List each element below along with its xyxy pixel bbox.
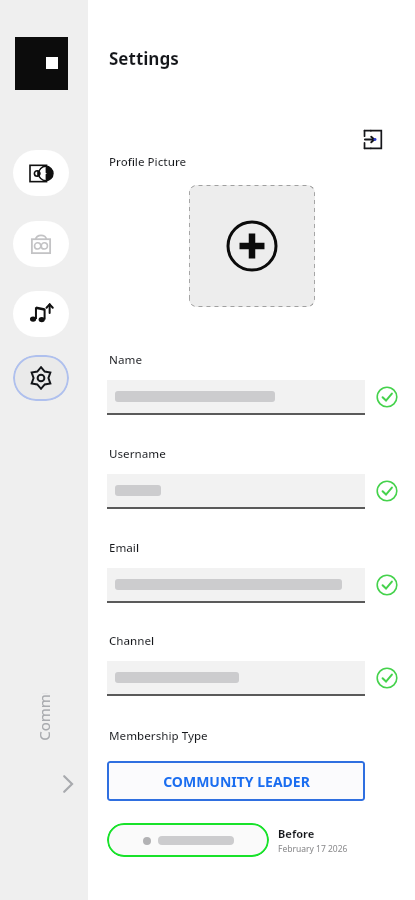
staticText: Community Leader [34,693,54,741]
staticText: Before [278,826,315,841]
button[interactable]: Merch [13,221,69,267]
button[interactable]: Channel [107,661,365,697]
button[interactable]: Expand [53,770,81,798]
staticText: COMMUNITY LEADER [163,772,310,791]
button[interactable]: Log out [356,123,388,155]
staticText: Channel [109,633,155,649]
staticText: Email [109,540,140,556]
staticText: Profile Picture [109,154,187,170]
staticText: Username [109,446,166,462]
button[interactable]: Upload music [13,291,69,337]
button[interactable]: Add profile picture [189,185,315,307]
button[interactable]: Membership status [107,823,269,857]
button[interactable]: COMMUNITY LEADER [107,761,365,801]
button[interactable]: Albums [13,150,69,196]
button[interactable]: Email [107,568,365,604]
staticText: Settings [109,47,179,70]
staticText: February 17 2026 [278,843,348,855]
button[interactable]: Username [107,474,365,510]
button[interactable]: Name [107,380,365,416]
button[interactable]: Community Leader [20,622,68,812]
staticText: Membership Type [109,728,208,744]
button[interactable]: Home logo [15,37,68,90]
button[interactable]: Settings [13,355,69,401]
staticText: Name [109,352,142,368]
